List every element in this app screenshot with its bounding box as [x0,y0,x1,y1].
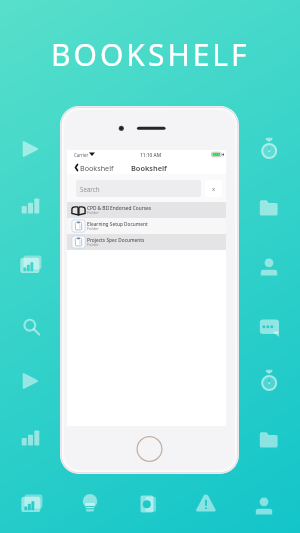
button[interactable]: CPD & BII Endorsed Courses [67,202,226,218]
button[interactable]: Projects Spec Documents [67,234,226,250]
staticText: Folder [87,210,99,215]
staticText: Elearning Setup Document [87,221,148,227]
button[interactable]: Elearning Setup Document [67,218,226,234]
staticText: Carrier [74,152,89,158]
staticText: Bookshelf [80,163,114,173]
staticText: 11:10 AM [140,152,162,159]
staticText: BOOKSHELF [51,34,250,75]
button[interactable]: Search [76,180,201,197]
button[interactable]: Clear search [205,180,222,197]
staticText: CPD & BII Endorsed Courses [87,205,152,211]
staticText: Projects Spec Documents [87,237,145,243]
staticText: x [212,185,216,193]
staticText: Folder [87,242,99,247]
staticText: Folder [87,226,99,231]
button[interactable]: Bookshelf [74,161,116,173]
staticText: Search [80,185,100,193]
staticText: Bookshelf [131,163,167,173]
